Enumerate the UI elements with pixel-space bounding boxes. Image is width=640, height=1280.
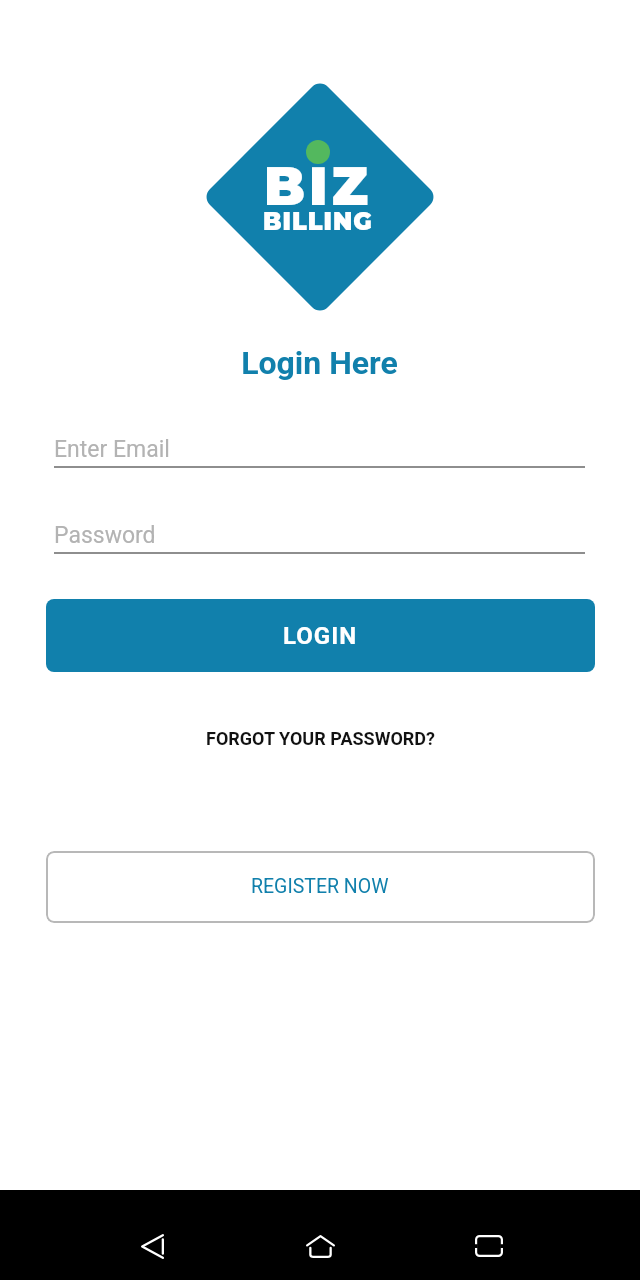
button[interactable]: Back	[107, 1201, 197, 1280]
staticText: Password	[54, 522, 156, 549]
staticText: FORGOT YOUR PASSWORD?	[206, 728, 435, 749]
staticText: Login Here	[241, 344, 398, 382]
button[interactable]: Password	[54, 515, 585, 554]
button[interactable]: REGISTER NOW	[46, 851, 595, 923]
staticText: BILLING	[263, 207, 373, 236]
staticText: LOGIN	[283, 622, 358, 650]
button[interactable]: Recent apps	[444, 1201, 534, 1280]
staticText: Enter Email	[54, 436, 170, 463]
staticText: BIZ	[264, 154, 372, 219]
button[interactable]: Home	[275, 1201, 365, 1280]
staticText: REGISTER NOW	[251, 875, 389, 898]
button[interactable]: LOGIN	[46, 599, 595, 672]
button[interactable]: FORGOT YOUR PASSWORD?	[192, 717, 449, 760]
button[interactable]: Enter Email	[54, 429, 585, 468]
button[interactable]: Biz Billing logo	[202, 79, 438, 315]
